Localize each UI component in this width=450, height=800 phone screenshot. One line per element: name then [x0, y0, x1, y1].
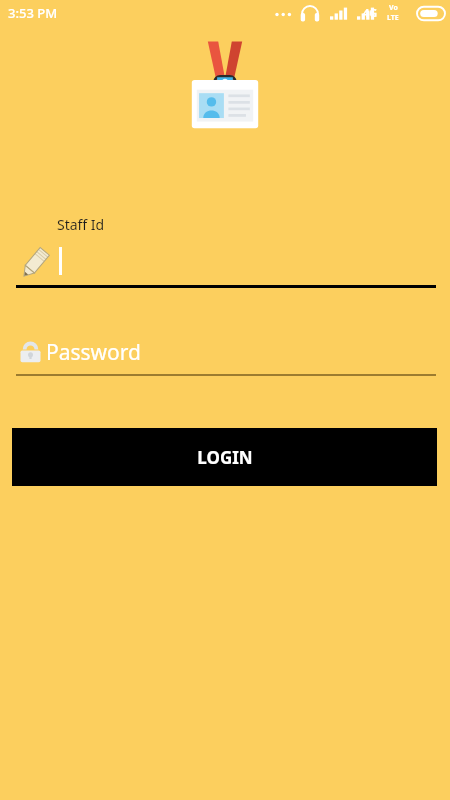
staticText: 3:53 PM — [8, 4, 58, 22]
button[interactable]: LOGIN — [12, 428, 437, 486]
staticText: LOGIN — [197, 446, 253, 469]
staticText: Vo — [389, 3, 398, 13]
button[interactable]: Password input field — [12, 336, 438, 376]
staticText: 4G — [363, 5, 378, 20]
staticText: LTE — [387, 13, 399, 23]
staticText: Password — [46, 338, 141, 367]
staticText: Staff Id — [57, 215, 105, 234]
button[interactable]: Staff Id input field — [12, 238, 438, 288]
